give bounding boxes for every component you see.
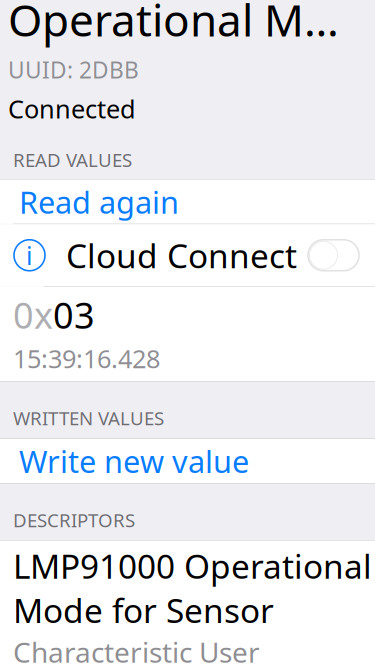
- staticText: UUID: 2DBB: [8, 55, 139, 85]
- staticText: DESCRIPTORS: [13, 507, 135, 532]
- staticText: LMP91000 Operational Mode for Sensor: [13, 544, 372, 632]
- staticText: Connected: [8, 92, 136, 125]
- staticText: Read again: [19, 181, 179, 222]
- staticText: Cloud Connect: [66, 233, 297, 277]
- button[interactable]: Write new value: [0, 439, 375, 483]
- staticText: Write new value: [19, 441, 249, 481]
- staticText: Characteristic User Description: [13, 633, 260, 667]
- staticText: 15:39:16.428: [13, 342, 160, 375]
- staticText: WRITTEN VALUES: [13, 406, 164, 430]
- staticText: 03: [53, 291, 95, 339]
- staticText: READ VALUES: [13, 147, 132, 172]
- button[interactable]: Read again: [0, 180, 375, 224]
- staticText: i: [26, 238, 33, 272]
- staticText: LMP91000 Operational M…: [8, 0, 339, 49]
- staticText: 0x: [13, 291, 53, 339]
- button[interactable]: LMP91000 Operational Mode for Sensor: [0, 541, 375, 667]
- button[interactable]: i: [0, 224, 375, 286]
